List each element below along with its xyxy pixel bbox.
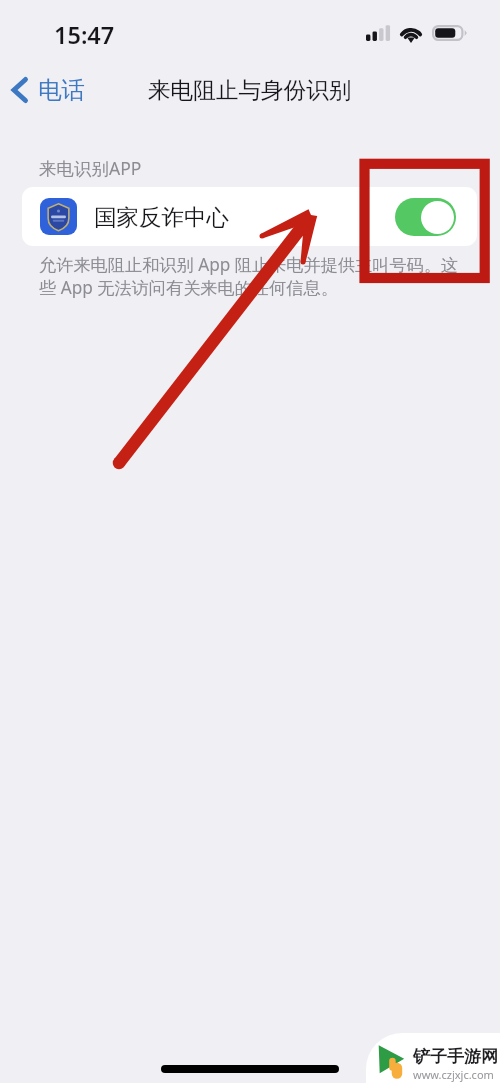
button[interactable]: 开关 <box>395 198 456 236</box>
staticText: 来电阻止与身份识别 <box>148 76 352 104</box>
staticText: 铲子手游网 <box>413 1046 498 1067</box>
staticText: 国家反诈中心 <box>94 203 229 231</box>
button[interactable]: 返回 电话 <box>0 69 97 111</box>
staticText: 来电识别APP <box>39 156 142 180</box>
staticText: www.czjxjc.com <box>413 1067 494 1082</box>
staticText: 允许来电阻止和识别 App 阻止来电并提供主叫号码。这些 App 无法访问有关来… <box>39 253 467 299</box>
button[interactable]: 国家反诈中心 <box>22 187 477 246</box>
staticText: 15:47 <box>54 19 115 51</box>
staticText: 电话 <box>38 75 85 105</box>
